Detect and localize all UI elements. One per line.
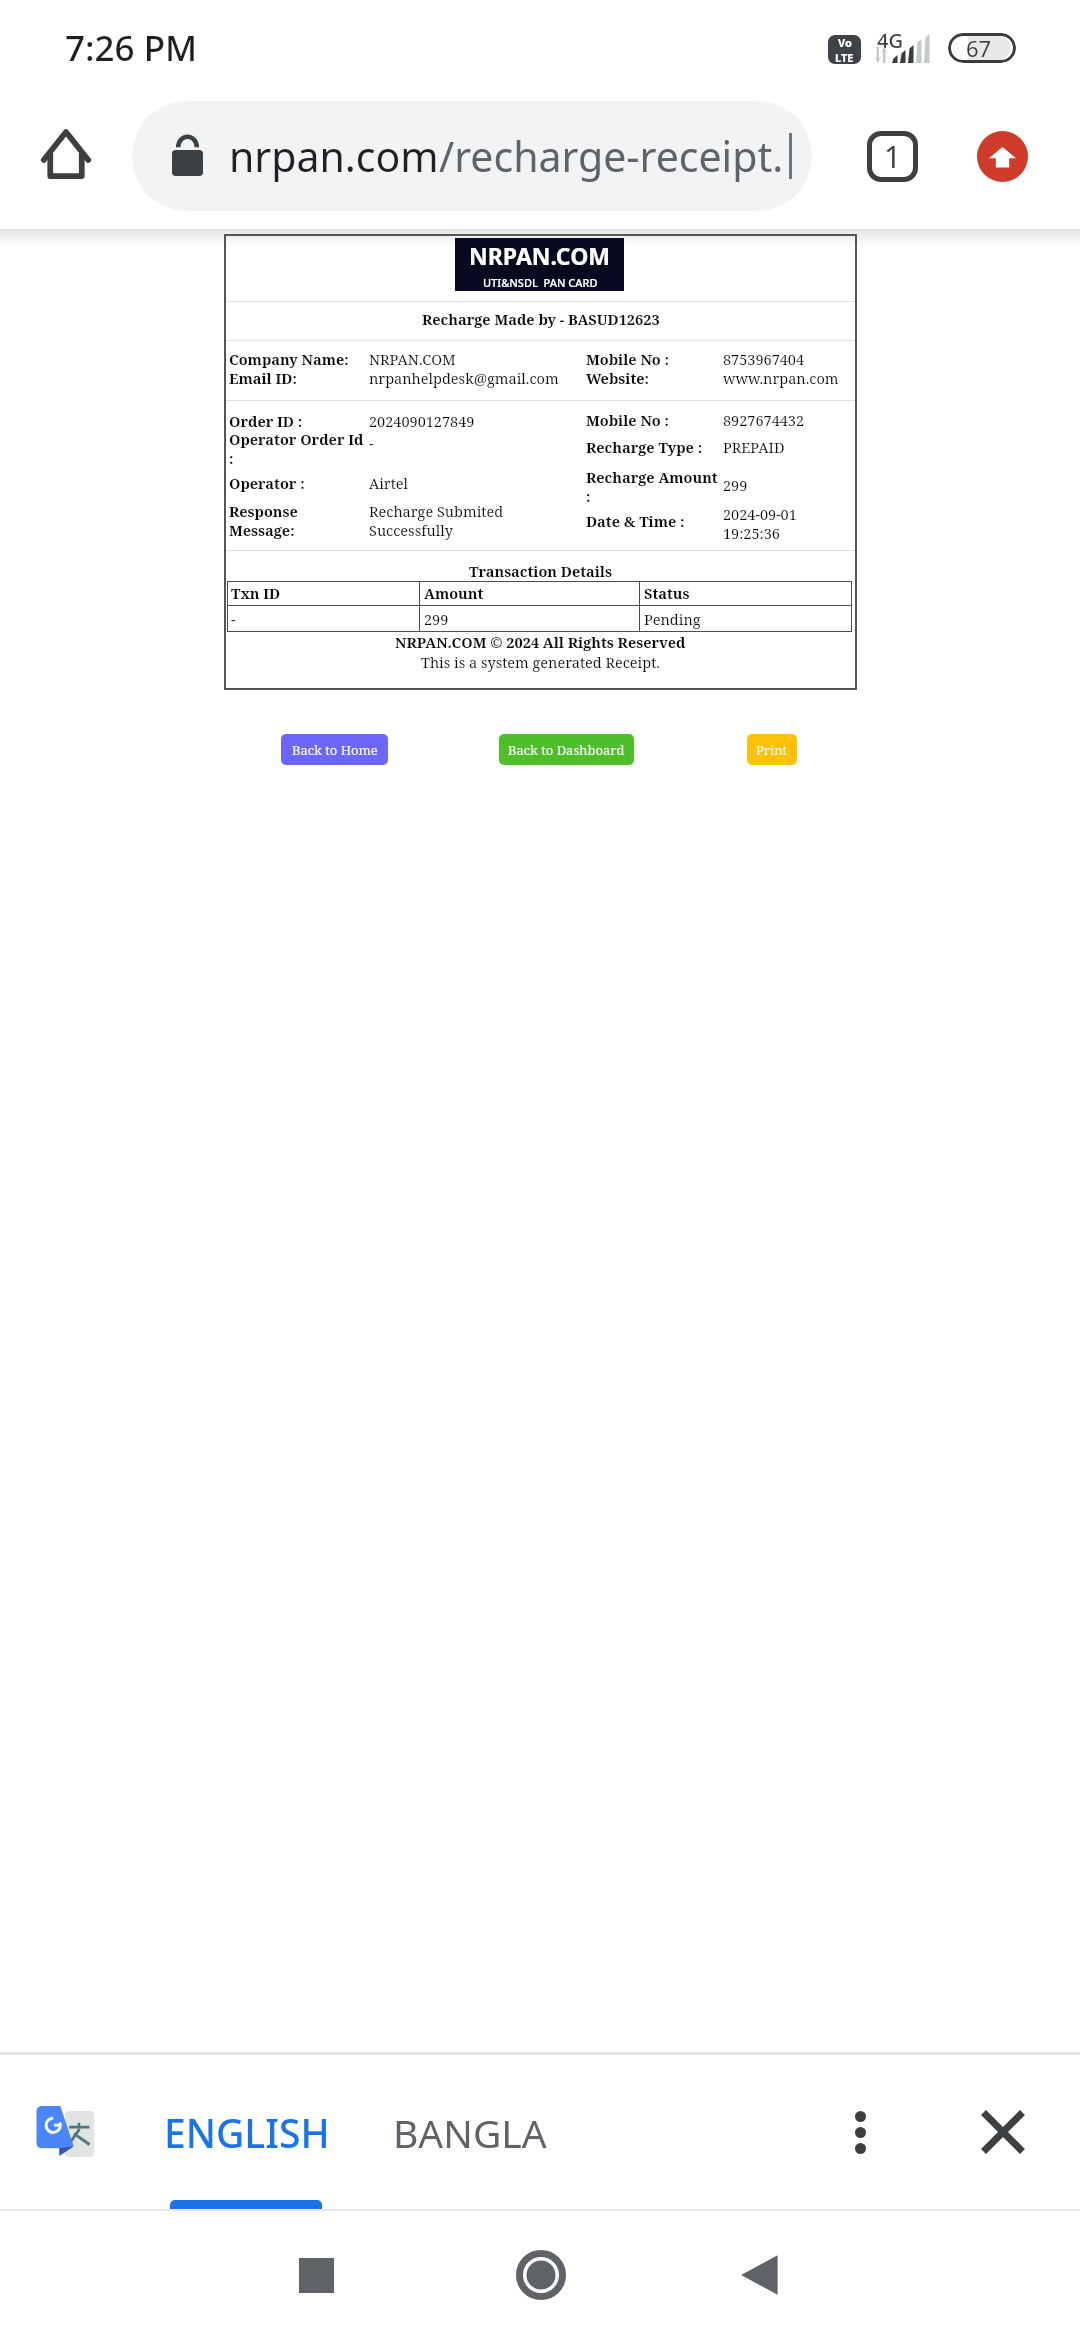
button[interactable]: ENGLISH — [154, 2077, 340, 2187]
staticText: Recharge Amount : — [586, 467, 718, 507]
staticText: - — [369, 433, 374, 453]
button[interactable]: Back to Home — [281, 734, 388, 765]
staticText: 4G — [877, 27, 903, 54]
staticText: nrpan.com — [229, 128, 439, 184]
button[interactable]: Close — [958, 2087, 1048, 2177]
staticText: Transaction Details — [469, 561, 612, 581]
button[interactable]: Tabs — [847, 111, 937, 201]
staticText: Vo — [838, 35, 852, 50]
staticText: Txn ID — [231, 583, 281, 603]
staticText: 2024090127849 — [369, 411, 475, 431]
staticText: NRPAN.COM — [469, 240, 611, 271]
staticText: Recharge Made by - BASUD12623 — [422, 309, 660, 329]
staticText: 8753967404 www.nrpan.com — [723, 349, 839, 389]
staticText: LTE — [835, 50, 854, 64]
staticText: - — [231, 609, 236, 629]
staticText: Order ID : — [229, 411, 303, 431]
staticText: 2024-09-01 19:25:36 — [723, 504, 797, 544]
staticText: Mobile No : Website: — [586, 349, 669, 389]
button[interactable]: nrpan.com — [132, 101, 812, 211]
button[interactable]: Home — [21, 109, 111, 199]
staticText: Print — [756, 741, 788, 759]
staticText: /recharge-receipt. — [439, 128, 784, 184]
staticText: 1 — [884, 136, 902, 177]
staticText: Response Message: — [229, 501, 298, 541]
staticText: PREPAID — [723, 437, 785, 457]
staticText: Back to Home — [292, 741, 378, 759]
staticText: Recharge Submited Successfully — [369, 501, 504, 541]
staticText: Airtel — [369, 473, 409, 493]
button[interactable]: Update Chrome — [957, 111, 1047, 201]
button[interactable]: Back — [705, 2220, 815, 2330]
staticText: BANGLA — [393, 2106, 547, 2159]
staticText: 299 — [424, 609, 449, 629]
button[interactable]: Home — [486, 2220, 596, 2330]
staticText: UTI&NSDL PAN CARD — [483, 275, 598, 290]
staticText: This is a system generated Receipt. — [421, 652, 660, 672]
staticText: Recharge Type : — [586, 437, 703, 457]
staticText: Amount — [424, 583, 484, 603]
staticText: Company Name: Email ID: — [229, 349, 349, 389]
button[interactable]: Recent apps — [261, 2220, 371, 2330]
staticText: ENGLISH — [164, 2106, 330, 2159]
staticText: 8927674432 — [723, 410, 805, 430]
staticText: Mobile No : — [586, 410, 669, 430]
staticText: NRPAN.COM nrpanhelpdesk@gmail.com — [369, 349, 559, 389]
staticText: Pending — [644, 609, 701, 629]
button[interactable]: Back to Dashboard — [499, 734, 634, 765]
staticText: 67 — [966, 33, 992, 63]
staticText: Operator : — [229, 473, 305, 493]
staticText: NRPAN.COM © 2024 All Rights Reserved — [395, 632, 686, 652]
staticText: 7:26 PM — [65, 24, 198, 72]
staticText: 299 — [723, 475, 748, 495]
button[interactable]: More options — [815, 2087, 905, 2177]
staticText: Status — [644, 583, 690, 603]
button[interactable]: BANGLA — [380, 2077, 560, 2187]
staticText: Date & Time : — [586, 511, 685, 531]
staticText: Back to Dashboard — [508, 741, 625, 759]
staticText: Operator Order Id : — [229, 429, 364, 469]
button[interactable]: Print — [747, 734, 797, 765]
